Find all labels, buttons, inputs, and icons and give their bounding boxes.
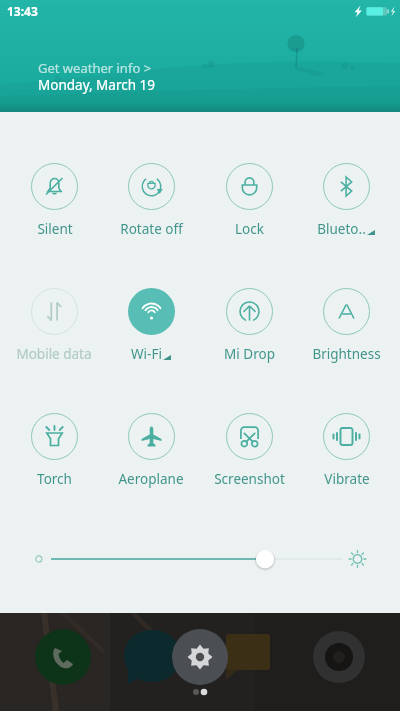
staticText: Mobile data <box>16 345 92 363</box>
staticText: Torch <box>37 470 72 488</box>
button[interactable]: Rotate off <box>104 163 198 237</box>
button[interactable]: Aeroplane <box>104 413 198 487</box>
button[interactable]: Screenshot <box>202 413 296 487</box>
button[interactable]: Mobile data <box>7 288 101 362</box>
staticText: Get weather info > <box>38 59 152 77</box>
button[interactable]: Silent <box>7 163 101 237</box>
staticText: Blueto.. <box>317 220 366 238</box>
button[interactable]: Vibrate <box>299 413 393 487</box>
staticText: Brightness <box>312 345 381 363</box>
staticText: Vibrate <box>324 470 370 488</box>
staticText: Aeroplane <box>118 470 184 488</box>
button[interactable] <box>0 537 400 581</box>
staticText: Silent <box>37 220 73 238</box>
staticText: Screenshot <box>214 470 285 488</box>
button[interactable]: Torch <box>7 413 101 487</box>
button[interactable]: Wi-Fi <box>104 288 198 362</box>
button[interactable]: Mi Drop <box>202 288 296 362</box>
staticText: Rotate off <box>120 220 183 238</box>
button[interactable]: Lock <box>202 163 296 237</box>
staticText: Monday, March 19 <box>38 76 156 94</box>
staticText: Lock <box>235 220 264 238</box>
staticText: Wi-Fi <box>131 345 162 363</box>
button[interactable]: Brightness <box>299 288 393 362</box>
staticText: Mi Drop <box>224 345 275 363</box>
staticText: 13:43 <box>7 3 38 19</box>
button[interactable]: Blueto.. <box>299 163 393 237</box>
